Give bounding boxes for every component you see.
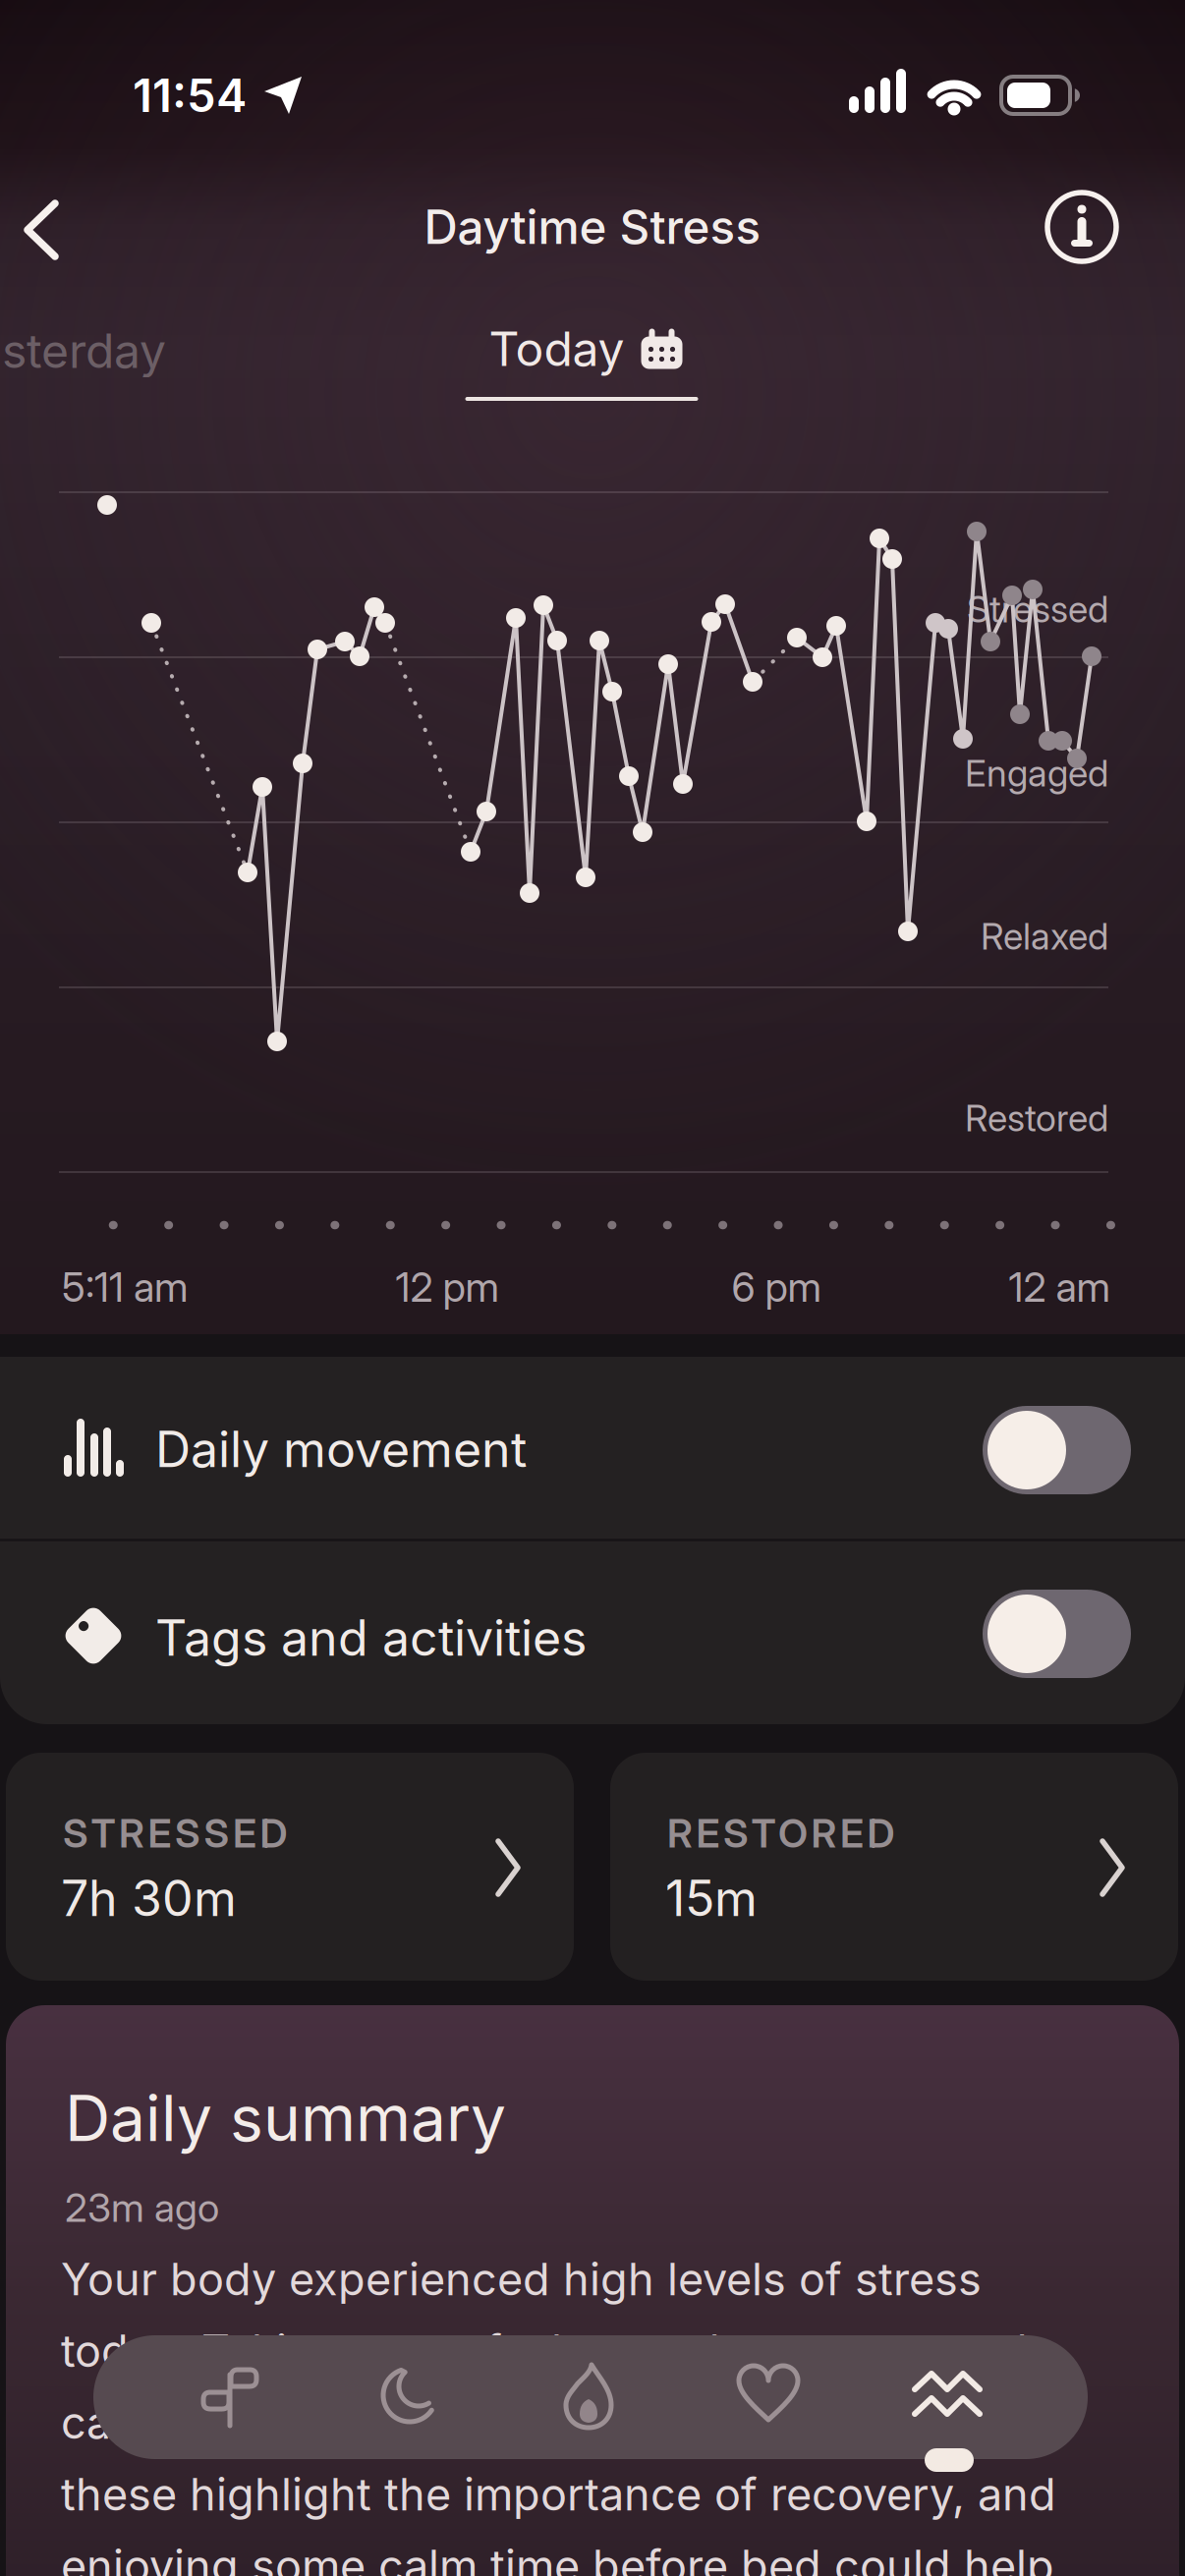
staticText: Daily movement <box>155 1419 527 1479</box>
button[interactable]: Daily movement <box>983 1406 1131 1494</box>
staticText: 7h 30m <box>61 1868 237 1928</box>
button[interactable]: Sleep <box>351 2336 473 2458</box>
staticText: today. Taking note of what made you stre… <box>61 2324 1028 2378</box>
button[interactable]: Info <box>1035 180 1129 274</box>
button[interactable]: Tags and activities <box>983 1590 1131 1678</box>
button[interactable]: Back <box>6 187 81 273</box>
button[interactable]: RESTORED <box>610 1753 1178 1981</box>
staticText: Daytime Stress <box>424 199 761 255</box>
button[interactable]: STRESSED <box>6 1753 574 1981</box>
staticText: Tags and activities <box>155 1608 587 1668</box>
button[interactable]: Yesterday <box>0 322 166 379</box>
button[interactable]: Today <box>171 2336 293 2458</box>
staticText: Stressed <box>967 587 1108 631</box>
staticText: STRESSED <box>63 1809 287 1857</box>
staticText: 12 am <box>1009 1263 1110 1311</box>
staticText: enjoying some calm time before bed could… <box>61 2539 1054 2576</box>
button[interactable]: Stress <box>888 2336 1010 2458</box>
staticText: Daily summary <box>65 2080 506 2156</box>
staticText: 15m <box>665 1868 758 1928</box>
staticText: 23m ago <box>65 2184 219 2231</box>
staticText: can help you recognize it. Moments of ea… <box>61 2396 1061 2449</box>
staticText: Your body experienced high levels of str… <box>61 2253 982 2306</box>
staticText: Restored <box>965 1096 1108 1140</box>
staticText: RESTORED <box>667 1809 895 1857</box>
staticText: Today <box>489 320 624 377</box>
staticText: these highlight the importance of recove… <box>61 2468 1056 2521</box>
button[interactable]: Today <box>489 320 682 377</box>
button[interactable]: Activity <box>530 2336 651 2458</box>
staticText: 12 pm <box>395 1263 499 1311</box>
staticText: 6 pm <box>732 1263 821 1311</box>
staticText: Yesterday <box>0 322 166 379</box>
staticText: 11:54 <box>133 67 247 123</box>
staticText: Engaged <box>965 751 1108 795</box>
staticText: Relaxed <box>981 914 1108 958</box>
button[interactable]: Heart health <box>709 2336 831 2458</box>
staticText: 5:11 am <box>62 1263 188 1311</box>
